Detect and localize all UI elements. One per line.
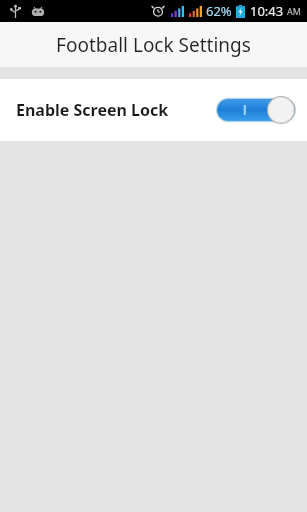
staticText: Enable Screen Lock (16, 99, 169, 121)
button[interactable]: Enable Screen Lock (0, 79, 307, 141)
staticText: AM (287, 5, 301, 17)
staticText: 10:43 (250, 2, 284, 20)
button[interactable]: Enable Screen Lock toggle, on (216, 95, 296, 125)
staticText: Football Lock Settings (0, 32, 307, 58)
staticText: 62% (206, 2, 232, 20)
